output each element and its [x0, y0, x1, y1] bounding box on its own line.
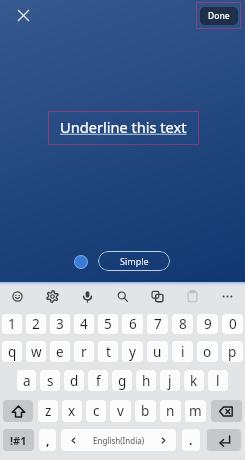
button[interactable]: l: [208, 370, 228, 391]
staticText: 2: [32, 315, 40, 333]
staticText: ,: [46, 432, 50, 448]
staticText: v: [117, 402, 124, 420]
staticText: m: [189, 402, 202, 420]
staticText: l: [216, 372, 220, 390]
button[interactable]: Space, English(India): [61, 429, 176, 451]
button[interactable]: b: [135, 400, 156, 422]
button[interactable]: p: [222, 341, 243, 362]
button[interactable]: More options: [210, 283, 245, 310]
button[interactable]: o: [197, 341, 218, 362]
button[interactable]: g: [112, 370, 132, 391]
button[interactable]: 8: [172, 314, 193, 334]
staticText: c: [93, 402, 100, 420]
button[interactable]: u: [147, 341, 168, 362]
staticText: e: [56, 343, 64, 361]
button[interactable]: Emoji: [0, 283, 35, 310]
staticText: i: [181, 343, 185, 361]
button[interactable]: 2: [26, 314, 46, 334]
staticText: Simple: [120, 255, 149, 267]
button[interactable]: 7: [147, 314, 168, 334]
staticText: y: [129, 343, 136, 361]
staticText: 8: [179, 315, 187, 333]
staticText: w: [31, 343, 42, 361]
staticText: k: [190, 372, 198, 390]
button[interactable]: Clipboard: [175, 283, 210, 310]
staticText: q: [8, 343, 17, 361]
button[interactable]: z: [38, 400, 58, 422]
button[interactable]: k: [184, 370, 204, 391]
staticText: j: [168, 372, 172, 390]
button[interactable]: r: [74, 341, 94, 362]
staticText: 7: [154, 315, 162, 333]
button[interactable]: 3: [50, 314, 70, 334]
button[interactable]: c: [86, 400, 106, 422]
staticText: x: [68, 402, 76, 420]
button[interactable]: 4: [74, 314, 94, 334]
button[interactable]: e: [50, 341, 70, 362]
button[interactable]: q: [2, 341, 22, 362]
staticText: 9: [204, 315, 212, 333]
button[interactable]: ,: [39, 429, 56, 451]
staticText: 3: [56, 315, 64, 333]
staticText: Done: [208, 10, 230, 22]
button[interactable]: Text colour: [74, 255, 88, 269]
staticText: a: [23, 372, 31, 390]
staticText: 0: [229, 315, 237, 333]
staticText: b: [141, 402, 150, 420]
staticText: n: [166, 402, 175, 420]
button[interactable]: 0: [222, 314, 243, 334]
button[interactable]: .: [182, 429, 200, 451]
staticText: g: [118, 372, 127, 390]
staticText: u: [153, 343, 162, 361]
button[interactable]: Underline this text: [48, 111, 199, 145]
staticText: z: [45, 402, 52, 420]
button[interactable]: w: [26, 341, 46, 362]
button[interactable]: Search: [105, 283, 140, 310]
button[interactable]: f: [88, 370, 108, 391]
staticText: 1: [8, 315, 16, 333]
button[interactable]: Done: [200, 7, 238, 25]
button[interactable]: 5: [98, 314, 118, 334]
button[interactable]: Settings: [35, 283, 70, 310]
button[interactable]: 6: [122, 314, 143, 334]
button[interactable]: Backspace: [211, 400, 242, 422]
button[interactable]: i: [172, 341, 193, 362]
button[interactable]: Simple: [98, 251, 170, 271]
staticText: p: [228, 343, 237, 361]
button[interactable]: Shift: [3, 400, 33, 422]
button[interactable]: x: [62, 400, 82, 422]
staticText: o: [203, 343, 212, 361]
staticText: 5: [104, 315, 112, 333]
staticText: d: [70, 372, 79, 390]
button[interactable]: m: [185, 400, 206, 422]
staticText: .: [189, 432, 193, 448]
button[interactable]: Voice input: [70, 283, 105, 310]
button[interactable]: Close: [10, 2, 37, 29]
button[interactable]: Enter: [207, 429, 241, 451]
staticText: h: [142, 372, 151, 390]
staticText: r: [81, 343, 87, 361]
staticText: English(India): [93, 435, 145, 446]
button[interactable]: 9: [197, 314, 218, 334]
button[interactable]: t: [98, 341, 118, 362]
staticText: s: [47, 372, 54, 390]
button[interactable]: s: [40, 370, 60, 391]
button[interactable]: !#1: [3, 429, 34, 451]
staticText: !#1: [10, 433, 27, 448]
button[interactable]: h: [136, 370, 156, 391]
staticText: f: [96, 372, 101, 390]
staticText: 4: [80, 315, 88, 333]
button[interactable]: a: [17, 370, 36, 391]
button[interactable]: y: [122, 341, 143, 362]
button[interactable]: j: [160, 370, 180, 391]
staticText: 6: [129, 315, 137, 333]
staticText: Underline this text: [60, 117, 187, 137]
button[interactable]: d: [64, 370, 84, 391]
staticText: t: [106, 343, 111, 361]
button[interactable]: n: [160, 400, 181, 422]
button[interactable]: 1: [2, 314, 22, 334]
button[interactable]: Stickers: [140, 283, 175, 310]
button[interactable]: v: [110, 400, 131, 422]
